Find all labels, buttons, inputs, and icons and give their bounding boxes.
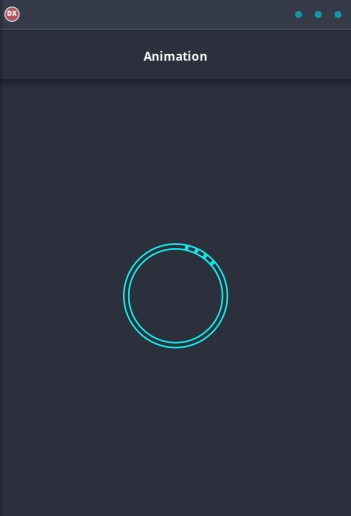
staticText: DX — [7, 9, 17, 18]
button[interactable]: Zoom — [315, 11, 322, 18]
button[interactable]: Minimize — [295, 11, 302, 18]
button[interactable]: Close — [334, 11, 341, 18]
button[interactable]: Account — [0, 2, 24, 26]
staticText: Animation — [143, 48, 207, 64]
